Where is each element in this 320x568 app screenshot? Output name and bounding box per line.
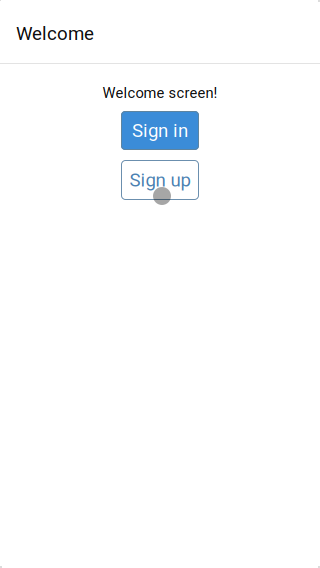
staticText: Welcome xyxy=(16,23,94,44)
staticText: Welcome screen! xyxy=(102,84,217,102)
button[interactable]: Sign in xyxy=(121,111,199,150)
staticText: Sign in xyxy=(132,120,188,141)
staticText: Sign up xyxy=(129,169,190,191)
button[interactable]: Sign up xyxy=(121,160,199,200)
